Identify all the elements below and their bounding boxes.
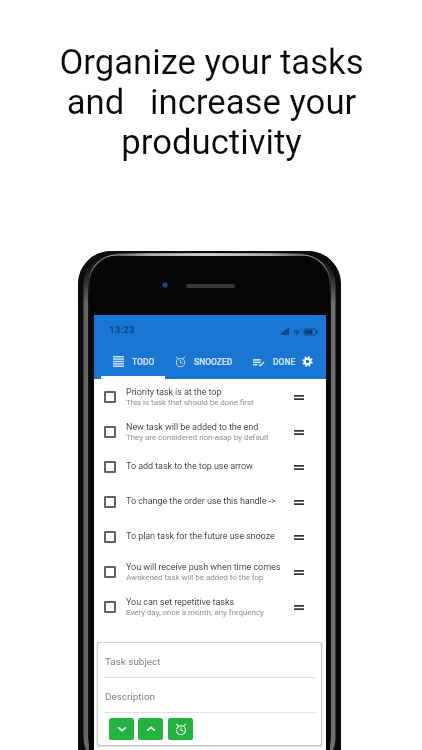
staticText: 13:23 bbox=[109, 324, 135, 336]
button[interactable]: Settings bbox=[296, 350, 319, 373]
button[interactable]: DONE bbox=[249, 344, 299, 379]
staticText: Task subject bbox=[105, 656, 161, 668]
staticText: DONE bbox=[273, 357, 296, 367]
button[interactable]: Move up bbox=[138, 718, 163, 740]
button[interactable]: New task will be added to the end bbox=[94, 414, 326, 449]
button[interactable]: Snooze bbox=[168, 718, 193, 740]
staticText: This is task that should be done first bbox=[126, 398, 254, 407]
button[interactable]: TODO bbox=[109, 344, 158, 379]
staticText: Priority task is at the top bbox=[126, 387, 222, 398]
staticText: Every day, once a month, any frequency bbox=[126, 608, 264, 617]
staticText: SNOOZED bbox=[194, 357, 233, 367]
staticText: Description bbox=[105, 691, 156, 703]
button[interactable]: SNOOZED bbox=[171, 344, 236, 379]
button[interactable]: Reorder handle bbox=[284, 526, 304, 548]
button[interactable]: To plan task for the future use snooze bbox=[94, 519, 326, 554]
button[interactable]: Reorder handle bbox=[284, 596, 304, 618]
button[interactable]: Reorder handle bbox=[284, 456, 304, 478]
staticText: To plan task for the future use snooze bbox=[126, 531, 275, 542]
staticText: They are considered non-asap by default bbox=[126, 433, 269, 442]
button[interactable]: Reorder handle bbox=[284, 561, 304, 583]
button[interactable]: Reorder handle bbox=[284, 491, 304, 513]
button[interactable]: Move down bbox=[109, 718, 134, 740]
button[interactable]: Reorder handle bbox=[284, 421, 304, 443]
staticText: You can set repetitive tasks bbox=[126, 597, 235, 608]
staticText: Awakened task will be added to the top bbox=[126, 573, 264, 582]
button[interactable]: To change the order use this handle -> bbox=[94, 484, 326, 519]
staticText: To add task to the top use arrow bbox=[126, 461, 253, 472]
staticText: Organize your tasks and increase your pr… bbox=[59, 42, 364, 162]
staticText: New task will be added to the end bbox=[126, 422, 259, 433]
button[interactable]: You can set repetitive tasks bbox=[94, 589, 326, 624]
staticText: To change the order use this handle -> bbox=[126, 496, 276, 507]
button[interactable]: Priority task is at the top bbox=[94, 379, 326, 414]
button[interactable]: To add task to the top use arrow bbox=[94, 449, 326, 484]
button[interactable]: Reorder handle bbox=[284, 386, 304, 408]
staticText: You will receive push when time comes bbox=[126, 562, 281, 573]
staticText: TODO bbox=[132, 357, 155, 367]
button[interactable]: You will receive push when time comes bbox=[94, 554, 326, 589]
